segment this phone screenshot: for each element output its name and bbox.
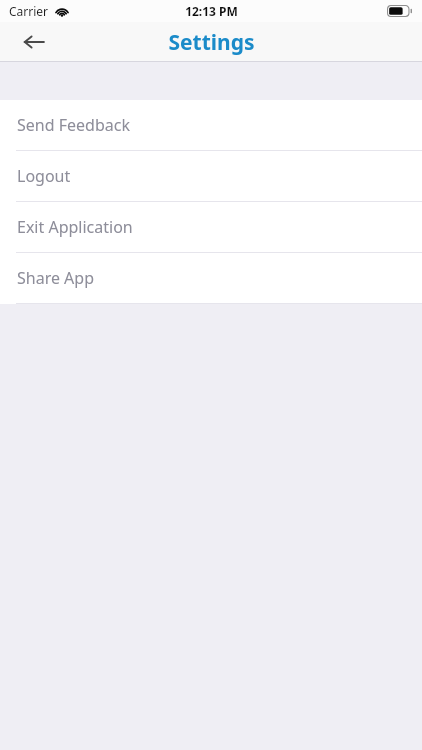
staticText: Settings xyxy=(168,28,255,57)
staticText: Exit Application xyxy=(17,216,133,238)
button[interactable]: Logout xyxy=(0,151,422,201)
staticText: Carrier xyxy=(9,3,49,19)
staticText: Logout xyxy=(17,165,71,187)
button[interactable]: Exit Application xyxy=(0,202,422,252)
button[interactable]: Back xyxy=(14,22,54,62)
staticText: 12:13 PM xyxy=(185,3,238,19)
button[interactable]: Share App xyxy=(0,253,422,303)
staticText: Share App xyxy=(17,267,95,289)
button[interactable]: Send Feedback xyxy=(0,100,422,150)
staticText: Send Feedback xyxy=(17,114,130,136)
